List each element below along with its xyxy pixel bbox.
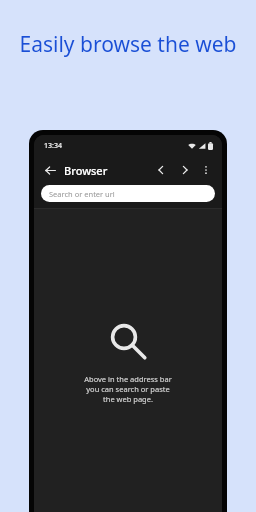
button[interactable]: Navigate forward — [176, 161, 194, 179]
staticText: Easily browse the web — [16, 30, 240, 59]
staticText: Search or enter url — [49, 189, 115, 199]
staticText: Above in the address bar you can search … — [84, 374, 172, 404]
staticText: 13:34 — [44, 141, 62, 151]
button[interactable]: Back — [41, 161, 59, 179]
button[interactable]: More options — [197, 161, 215, 179]
button[interactable]: Navigate back — [152, 161, 170, 179]
button[interactable]: Search or enter url — [41, 185, 215, 202]
staticText: Browser — [64, 163, 152, 178]
